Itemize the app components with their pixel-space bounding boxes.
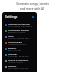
staticText: Dark theme, font size	[8, 67, 29, 70]
staticText: Generate songs, stories	[16, 2, 49, 6]
button[interactable]: Apps	[2, 34, 37, 40]
staticText: and more with AI	[20, 7, 44, 11]
staticText: Network & internet	[8, 22, 30, 25]
staticText: Apps	[8, 34, 14, 37]
staticText: Sound & vibration	[8, 58, 29, 61]
button[interactable]: Storage	[2, 52, 37, 58]
staticText: Storage	[8, 52, 17, 55]
staticText: Wi-Fi, mobile, data usage	[8, 25, 32, 28]
button[interactable]: Battery	[2, 46, 37, 52]
button[interactable]: Notifications	[2, 40, 37, 46]
button[interactable]: Network & internet	[2, 22, 37, 28]
staticText: 47% used - 68 GB free	[8, 55, 29, 58]
staticText: Bluetooth, pairing	[8, 31, 26, 34]
staticText: Assistant, default apps	[8, 37, 30, 40]
staticText: Display	[8, 64, 17, 67]
staticText: Battery	[8, 46, 17, 49]
button[interactable]: Sound & vibration	[2, 58, 37, 64]
staticText: Volume, haptics	[8, 61, 23, 64]
staticText: Connected devices	[8, 28, 29, 31]
staticText: Settings	[5, 15, 18, 19]
staticText: Notification history	[8, 43, 26, 46]
staticText: 80% - 6 hr left	[8, 49, 21, 52]
button[interactable]: Display	[2, 64, 37, 70]
button[interactable]: Connected devices	[2, 28, 37, 34]
staticText: Notifications	[8, 40, 23, 43]
